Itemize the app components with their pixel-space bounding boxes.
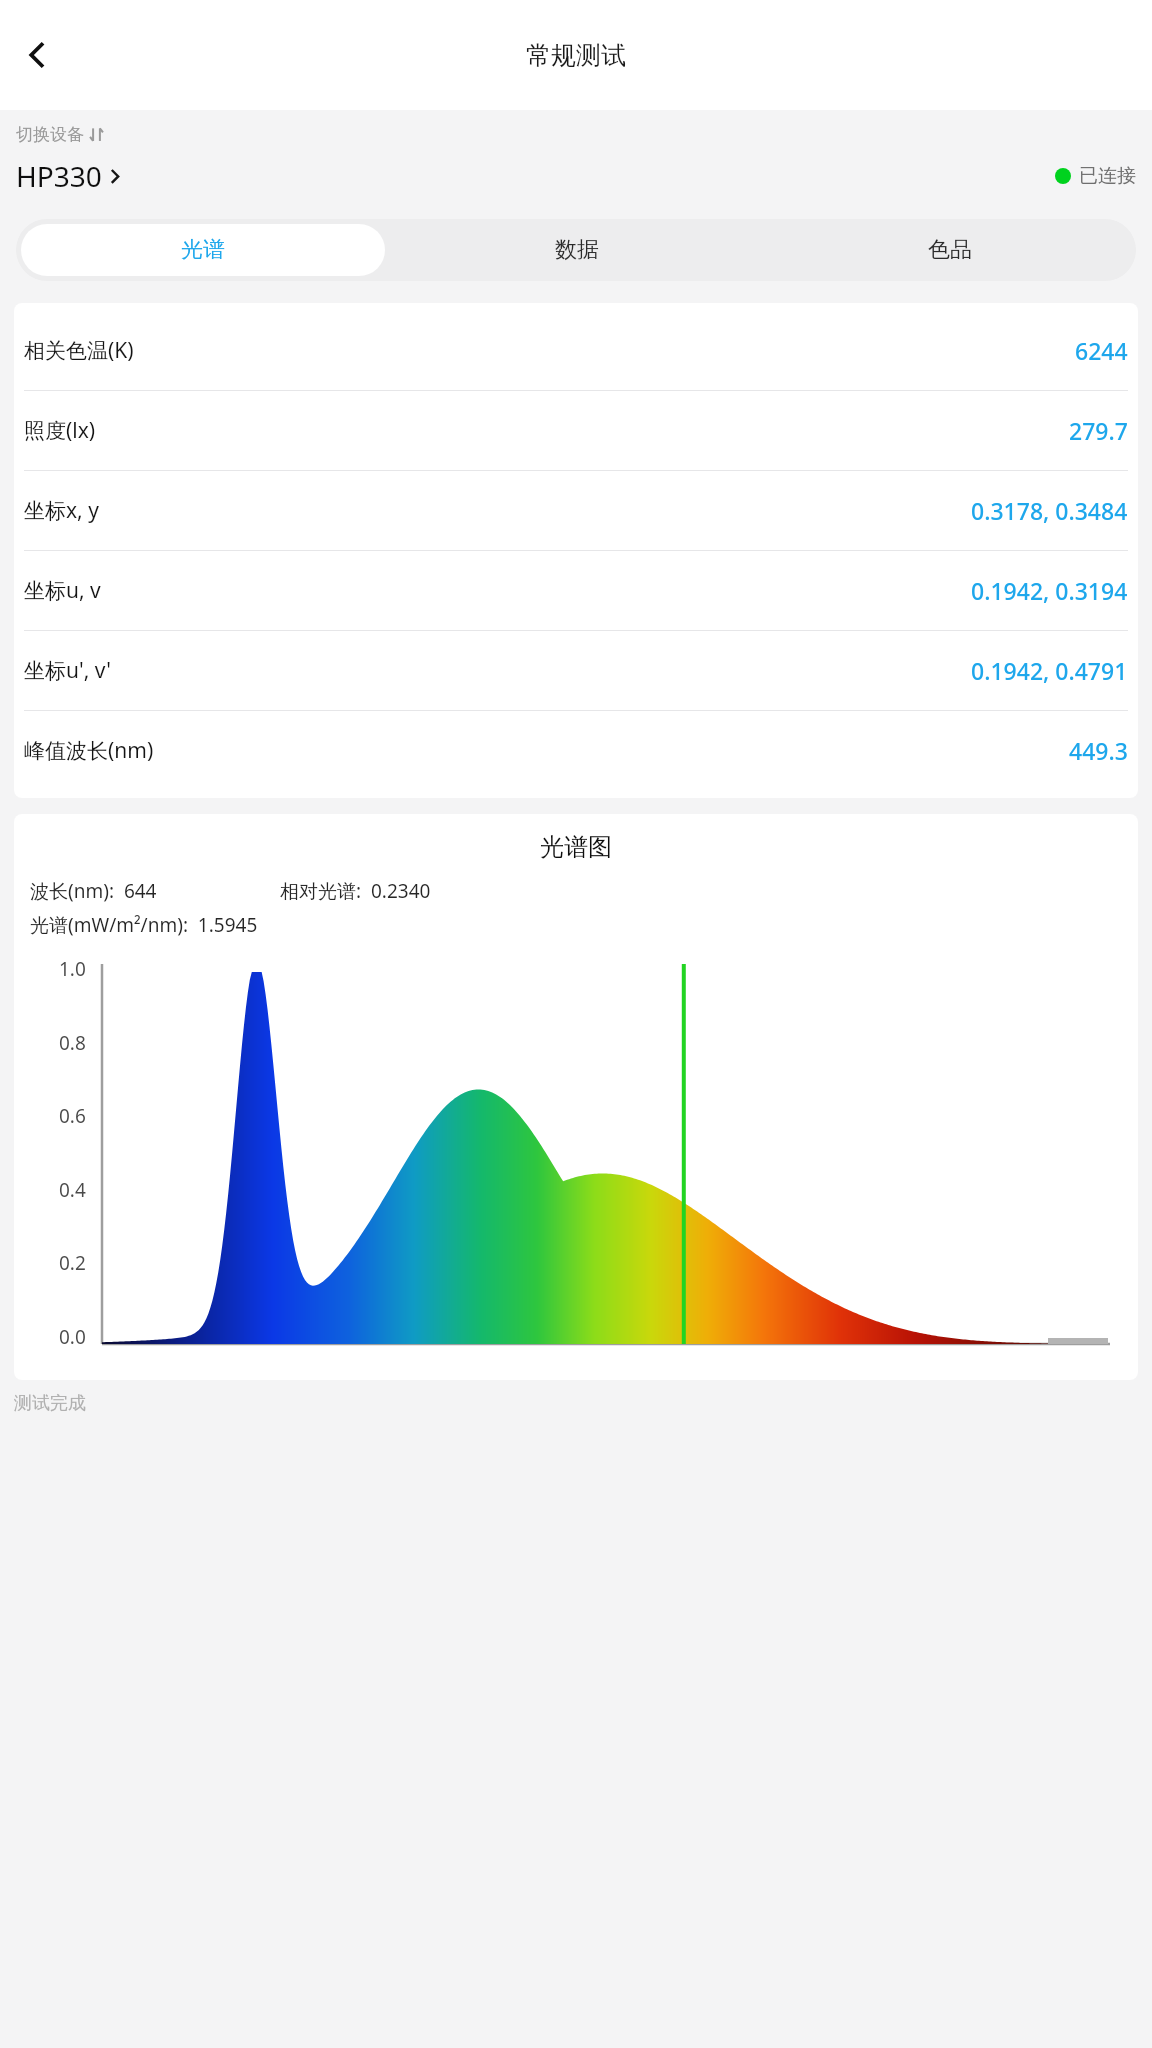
button[interactable]: 坐标u, v <box>24 551 1128 630</box>
button[interactable]: Back <box>10 27 66 83</box>
button[interactable]: 相关色温(K) <box>24 311 1128 390</box>
button[interactable]: 切换设备 <box>16 124 105 145</box>
staticText: 光谱 <box>181 236 225 264</box>
staticText: HP330 <box>16 157 102 195</box>
staticText: 449.3 <box>1069 735 1128 766</box>
staticText: 279.7 <box>1069 415 1128 446</box>
staticText: 已连接 <box>1079 164 1136 188</box>
staticText: 0.2 <box>59 1250 86 1276</box>
staticText: 切换设备 <box>16 124 84 145</box>
button[interactable]: 坐标x, y <box>24 471 1128 550</box>
staticText: 坐标x, y <box>24 496 99 525</box>
staticText: 峰值波长(nm) <box>24 736 154 765</box>
button[interactable]: 光谱 <box>21 224 385 276</box>
staticText: 0.8 <box>59 1030 86 1056</box>
staticText: 0.4 <box>59 1177 86 1203</box>
button[interactable]: 数据 <box>395 224 758 276</box>
button[interactable]: HP330 <box>16 157 125 195</box>
staticText: 相关色温(K) <box>24 336 134 365</box>
staticText: 1.0 <box>59 956 86 982</box>
staticText: 0.6 <box>59 1103 86 1129</box>
staticText: 光谱(mW/m²/nm): 1.5945 <box>30 912 258 938</box>
staticText: 0.1942, 0.3194 <box>971 575 1128 606</box>
staticText: 波长(nm): 644 <box>30 878 280 904</box>
staticText: 照度(lx) <box>24 416 96 445</box>
staticText: 0.1942, 0.4791 <box>971 655 1128 686</box>
staticText: 坐标u, v <box>24 576 101 605</box>
button[interactable]: 峰值波长(nm) <box>24 711 1128 790</box>
staticText: 数据 <box>555 236 599 264</box>
staticText: 常规测试 <box>526 40 626 71</box>
staticText: 0.3178, 0.3484 <box>971 495 1128 526</box>
button[interactable]: 色品 <box>768 224 1131 276</box>
staticText: 色品 <box>928 236 972 264</box>
button[interactable]: 坐标u', v' <box>24 631 1128 710</box>
button[interactable]: 照度(lx) <box>24 391 1128 470</box>
staticText: 相对光谱: 0.2340 <box>280 878 431 904</box>
staticText: 光谱图 <box>14 832 1138 862</box>
staticText: 坐标u', v' <box>24 656 112 685</box>
staticText: 0.0 <box>59 1324 86 1350</box>
staticText: 测试完成 <box>14 1392 86 1415</box>
staticText: 6244 <box>1075 335 1128 366</box>
